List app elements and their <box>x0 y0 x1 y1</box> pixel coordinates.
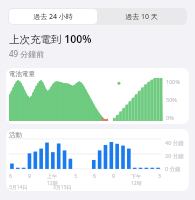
button[interactable]: 過去 24 小時 <box>9 9 97 24</box>
staticText: 上次充電到 100% <box>9 32 92 46</box>
staticText: 49 分鐘前 <box>9 48 45 59</box>
staticText: 3 <box>74 173 77 180</box>
staticText: 9 <box>28 173 31 180</box>
staticText: 活動 <box>9 131 22 139</box>
staticText: 0 分鐘 <box>165 165 181 173</box>
staticText: 100% <box>166 78 181 85</box>
button[interactable]: 過去 10 天 <box>97 9 186 24</box>
staticText: 3 <box>158 173 161 180</box>
staticText: 3月14日 <box>9 184 28 191</box>
staticText: 0% <box>166 114 174 121</box>
staticText: 電池電量 <box>9 70 35 78</box>
staticText: 過去 10 天 <box>125 12 158 22</box>
button[interactable]: 電池電量 <box>6 68 189 124</box>
staticText: 9 <box>112 173 115 180</box>
staticText: 50% <box>166 96 177 103</box>
staticText: 40 分鐘 <box>165 139 184 147</box>
button[interactable]: 活動 <box>6 129 189 191</box>
staticText: 3月15日 <box>53 184 72 191</box>
staticText: 上午 12時 <box>47 173 58 187</box>
staticText: 下午 12時 <box>131 173 142 187</box>
staticText: 過去 24 小時 <box>33 12 73 22</box>
staticText: 20 分鐘 <box>165 152 184 160</box>
staticText: 6 <box>93 173 96 180</box>
staticText: 6 <box>9 173 12 180</box>
